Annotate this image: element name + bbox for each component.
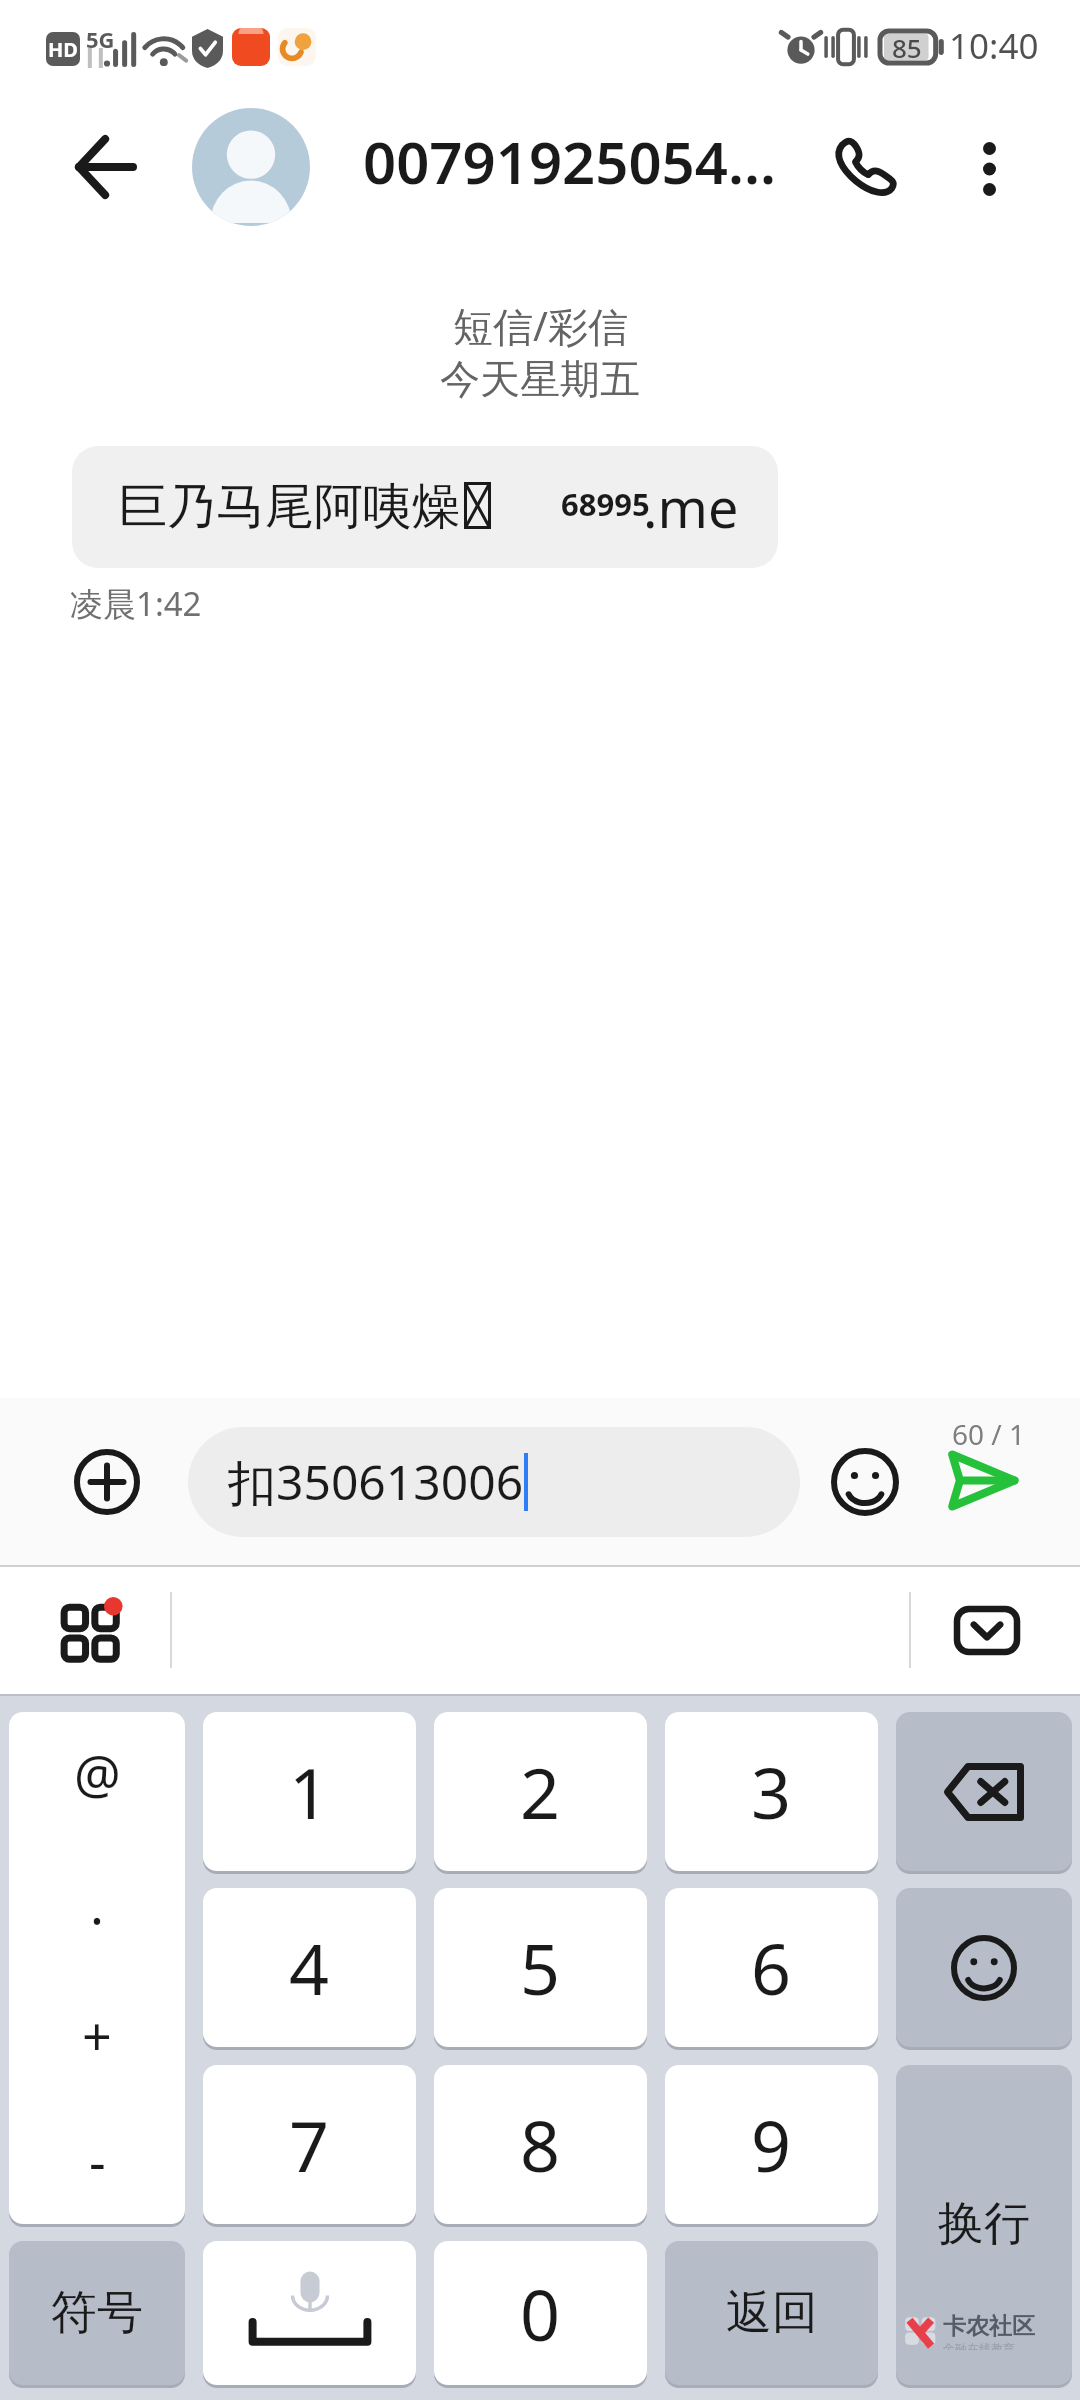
- button[interactable]: [896, 1888, 1072, 2047]
- button[interactable]: Emoji: [818, 1435, 912, 1529]
- staticText: 金融在线教育: [943, 2341, 1015, 2350]
- button[interactable]: 换行: [896, 2065, 1072, 2385]
- button[interactable]: 1: [203, 1712, 416, 1871]
- staticText: 2: [520, 1744, 561, 1839]
- staticText: 68995: [561, 483, 650, 525]
- staticText: 扣350613006: [228, 1449, 524, 1515]
- staticText: 0: [520, 2266, 561, 2361]
- button[interactable]: 0: [434, 2241, 647, 2385]
- button[interactable]: Hide keyboard: [942, 1585, 1032, 1675]
- staticText: 卡农社区: [943, 2312, 1035, 2341]
- staticText: 1: [289, 1744, 330, 1839]
- staticText: @: [74, 1738, 121, 1809]
- button[interactable]: 3: [665, 1712, 878, 1871]
- staticText: 凌晨1:42: [70, 581, 202, 626]
- staticText: 3: [751, 1744, 792, 1839]
- button[interactable]: 7: [203, 2065, 416, 2224]
- staticText: HD: [48, 36, 78, 63]
- staticText: 7: [289, 2097, 330, 2192]
- button[interactable]: Call: [822, 124, 908, 210]
- staticText: 85: [892, 30, 922, 65]
- button[interactable]: 9: [665, 2065, 878, 2224]
- button[interactable]: 6: [665, 1888, 878, 2047]
- button[interactable]: 2: [434, 1712, 647, 1871]
- staticText: ·: [90, 1884, 104, 1955]
- staticText: +: [82, 2000, 112, 2071]
- staticText: 短信/彩信: [453, 298, 628, 353]
- staticText: 5G: [86, 24, 115, 54]
- staticText: 10:40: [949, 22, 1039, 70]
- button[interactable]: 4: [203, 1888, 416, 2047]
- button[interactable]: 符号: [9, 2241, 185, 2385]
- staticText: 60 / 1: [952, 1415, 1026, 1453]
- staticText: -: [89, 2125, 106, 2196]
- staticText: 换行: [938, 2195, 1030, 2253]
- button[interactable]: 巨乃马尾阿咦燥: [72, 446, 778, 568]
- button[interactable]: Back: [61, 124, 147, 210]
- button[interactable]: Send: [936, 1437, 1030, 1523]
- button[interactable]: More options: [946, 126, 1032, 212]
- button[interactable]: @: [9, 1712, 185, 2224]
- staticText: 00791925054…: [363, 122, 777, 201]
- button[interactable]: More apps: [46, 1583, 136, 1673]
- staticText: 5: [520, 1920, 561, 2015]
- button[interactable]: 返回: [665, 2241, 878, 2385]
- button[interactable]: 扣350613006: [188, 1427, 800, 1537]
- button[interactable]: Add attachment: [60, 1435, 154, 1529]
- staticText: 9: [751, 2097, 792, 2192]
- staticText: 巨乃马尾阿咦燥: [118, 476, 461, 538]
- staticText: 4: [289, 1920, 330, 2015]
- staticText: 8: [520, 2097, 561, 2192]
- staticText: 今天星期五: [440, 354, 640, 404]
- staticText: 符号: [51, 2284, 143, 2342]
- button[interactable]: 8: [434, 2065, 647, 2224]
- button[interactable]: [203, 2241, 416, 2385]
- staticText: 6: [751, 1920, 792, 2015]
- staticText: .me: [643, 470, 739, 544]
- staticText: 返回: [726, 2284, 818, 2342]
- button[interactable]: 5: [434, 1888, 647, 2047]
- button[interactable]: [896, 1712, 1072, 1871]
